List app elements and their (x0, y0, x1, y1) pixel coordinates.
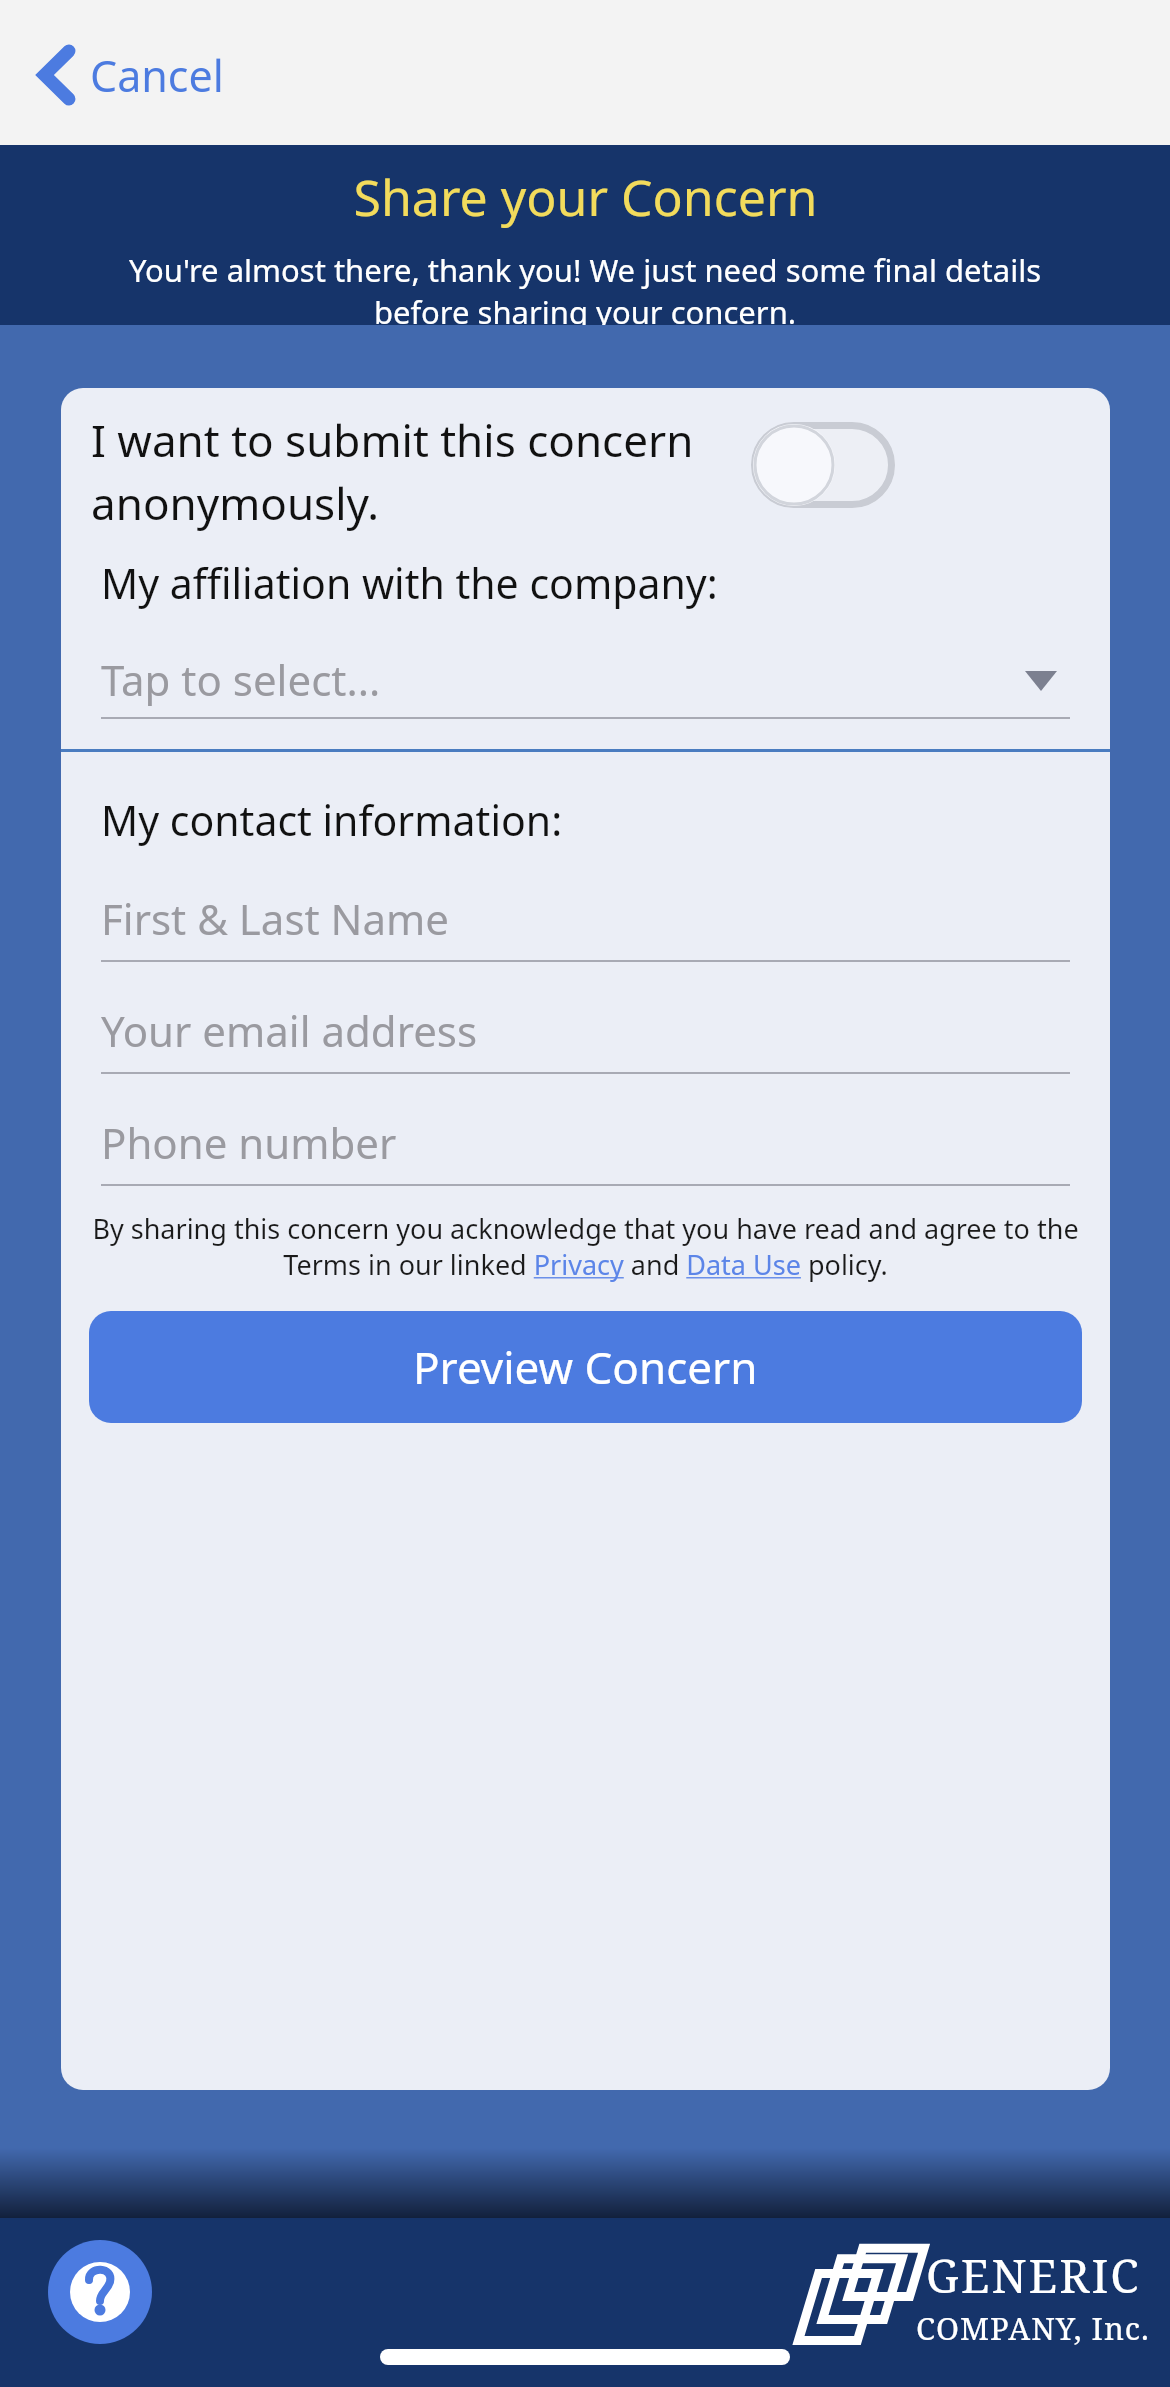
button[interactable]: Help (48, 2240, 152, 2344)
button[interactable]: Generic Company, Inc. (790, 2244, 1150, 2349)
staticText: Preview Concern (413, 1337, 758, 1397)
staticText: My contact information: (101, 792, 563, 848)
staticText: Phone number (101, 1114, 397, 1171)
staticText: Tap to select... (101, 651, 381, 708)
staticText: Your email address (101, 1002, 478, 1059)
staticText: Share your Concern (353, 163, 818, 231)
button[interactable]: Submit anonymously toggle (751, 422, 895, 508)
button[interactable]: Cancel (28, 35, 234, 115)
button[interactable]: First & Last Name (101, 886, 1070, 962)
staticText: Cancel (90, 46, 224, 105)
staticText: I want to submit this concern anonymousl… (91, 410, 721, 533)
staticText: By sharing this concern you acknowledge … (83, 1210, 1088, 1283)
staticText: First & Last Name (101, 890, 450, 947)
staticText: You're almost there, thank you! We just … (112, 249, 1058, 325)
button[interactable]: Preview Concern (89, 1311, 1082, 1423)
button[interactable]: Your email address (101, 998, 1070, 1074)
button[interactable]: Tap to select... (101, 647, 1070, 719)
button[interactable]: I want to submit this concern anonymousl… (61, 388, 1110, 533)
staticText: COMPANY, Inc. (916, 2307, 1150, 2349)
button[interactable]: Phone number (101, 1110, 1070, 1186)
staticText: My affiliation with the company: (101, 555, 718, 611)
staticText: GENERIC (926, 2244, 1141, 2307)
